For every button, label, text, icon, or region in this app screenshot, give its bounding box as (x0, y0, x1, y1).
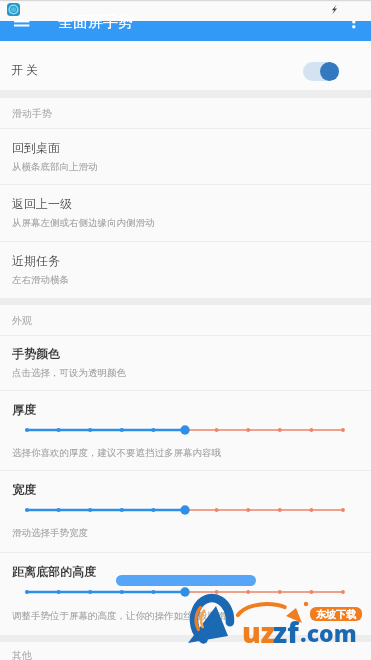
staticText: 左右滑动横条 (12, 274, 69, 286)
staticText: 东坡下载 (316, 608, 356, 621)
button[interactable]: 开 关 (0, 41, 371, 90)
button[interactable]: 近期任务 (0, 241, 371, 298)
staticText: 滑动手势 (12, 107, 52, 120)
staticText: 宽度 (12, 482, 36, 497)
staticText: 其他 (12, 649, 32, 660)
staticText: 调整手势位于屏幕的高度，让你的操作如丝1般顺滑 (12, 609, 227, 622)
staticText: 开 关 (11, 61, 39, 77)
staticText: uz (242, 613, 275, 651)
staticText: 从横条底部向上滑动 (12, 161, 98, 173)
staticText: 全面屏手势 (58, 13, 133, 32)
staticText: .com (300, 617, 357, 648)
button[interactable]: 手势颜色 (0, 335, 371, 390)
staticText: 近期任务 (12, 253, 60, 268)
staticText: 手势颜色 (12, 346, 60, 361)
staticText: 从屏幕左侧或右侧边缘向内侧滑动 (12, 217, 155, 229)
staticText: 滑动选择手势宽度 (12, 527, 88, 539)
staticText: 回到桌面 (12, 140, 60, 155)
button[interactable]: 厚度 (0, 390, 371, 470)
button[interactable]: 宽度 (0, 470, 371, 552)
button[interactable]: 返回上一级 (0, 184, 371, 241)
staticText: 外观 (12, 314, 32, 327)
button[interactable]: Navigation menu (0, 21, 371, 41)
staticText: 选择你喜欢的厚度，建议不要遮挡过多屏幕内容哦 (12, 447, 221, 459)
button[interactable]: More options (345, 21, 371, 41)
staticText: 厚度 (12, 402, 36, 417)
staticText: 距离底部的高度 (12, 564, 96, 579)
button[interactable]: 距离底部的高度 (0, 552, 371, 635)
staticText: 返回上一级 (12, 196, 72, 211)
button[interactable]: 回到桌面 (0, 128, 371, 184)
staticText: 点击选择，可设为透明颜色 (12, 367, 126, 379)
staticText: zf (273, 613, 299, 651)
